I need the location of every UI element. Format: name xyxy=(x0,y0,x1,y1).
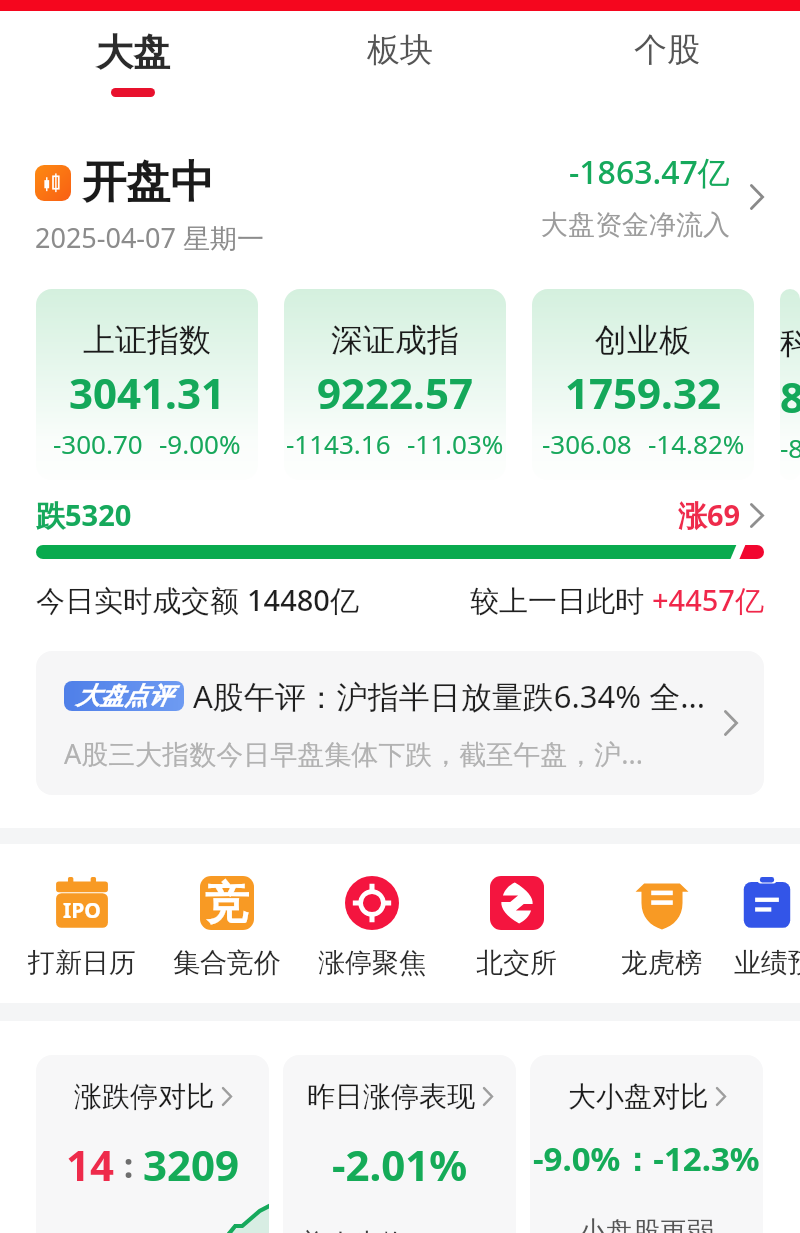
staticText: -2.01% xyxy=(332,1136,468,1193)
staticText: 集合竞价 xyxy=(173,946,281,980)
staticText: 上证指数 xyxy=(83,320,211,360)
button[interactable]: 创业板 xyxy=(532,289,754,480)
staticText: 板块 xyxy=(367,29,433,71)
staticText: 科创50 xyxy=(780,320,800,364)
button[interactable]: 北交所 xyxy=(444,876,589,980)
staticText: 竞 xyxy=(205,876,249,930)
staticText: 今日实时成交额 xyxy=(36,580,247,620)
staticText: 14 xyxy=(66,1136,115,1193)
staticText: A股三大指数今日早盘集体下跌，截至午盘，沪... xyxy=(64,735,643,772)
staticText: 1759.32 xyxy=(565,364,721,421)
button[interactable]: 龙虎榜 xyxy=(589,876,734,980)
staticText: -9.0%：-12.3% xyxy=(533,1136,760,1181)
staticText: 业绩预告 xyxy=(734,946,800,980)
button[interactable]: 竞 xyxy=(154,876,299,980)
button[interactable]: 跌5320 xyxy=(0,494,800,536)
staticText: 大盘资金净流入 xyxy=(541,208,730,242)
staticText: 大小盘对比 xyxy=(568,1079,708,1114)
button[interactable]: 板块 xyxy=(266,11,533,71)
staticText: 美农生物 xyxy=(299,1227,407,1233)
staticText: 开盘中 xyxy=(82,155,214,210)
staticText: 14480亿 xyxy=(247,580,359,620)
staticText: 跌5320 xyxy=(36,495,132,535)
button[interactable]: 大盘点评 xyxy=(36,651,764,795)
button[interactable]: 上证指数 xyxy=(36,289,258,480)
staticText: 3209 xyxy=(143,1136,240,1193)
staticText: 较上一日此时 xyxy=(470,580,652,620)
staticText: 9222.57 xyxy=(317,364,473,421)
staticText: -1863.47亿 xyxy=(569,150,730,194)
staticText: 涨跌停对比 xyxy=(74,1079,214,1114)
staticText: -1143.16 xyxy=(286,426,391,461)
staticText: 昨日涨停表现 xyxy=(307,1079,475,1114)
staticText: 小盘股更弱 xyxy=(579,1215,714,1233)
staticText: -306.08 xyxy=(542,426,632,461)
staticText: A股午评：沪指半日放量跌6.34% 全... xyxy=(193,675,706,717)
staticText: 创业板 xyxy=(595,320,691,360)
button[interactable]: 个股 xyxy=(533,11,800,71)
staticText: 深证成指 xyxy=(331,320,459,360)
staticText: 大盘点评 xyxy=(76,681,172,711)
staticText: 打新日历 xyxy=(28,946,136,980)
staticText: 888.88 xyxy=(780,368,800,425)
staticText: -300.70 xyxy=(53,426,143,461)
button[interactable]: 大盘 xyxy=(0,11,266,97)
staticText: 涨69 xyxy=(678,495,741,535)
staticText: : xyxy=(115,1142,143,1188)
staticText: 北交所 xyxy=(476,946,557,980)
staticText: -9.00% xyxy=(159,426,241,461)
button[interactable]: 业绩预告 xyxy=(734,876,800,980)
staticText: IPO xyxy=(63,896,101,925)
button[interactable]: IPO xyxy=(9,876,154,980)
staticText: 涨停聚焦 xyxy=(318,946,426,980)
staticText: 3041.31 xyxy=(69,364,225,421)
button[interactable]: 大小盘对比 xyxy=(530,1055,763,1233)
button[interactable]: 开盘中 xyxy=(0,155,800,267)
staticText: -88.88 xyxy=(780,430,800,465)
button[interactable]: 深证成指 xyxy=(284,289,506,480)
staticText: -11.03% xyxy=(407,426,504,461)
button[interactable]: 昨日涨停表现 xyxy=(283,1055,516,1233)
button[interactable]: 涨停聚焦 xyxy=(299,876,444,980)
button[interactable]: 科创50 xyxy=(780,289,800,480)
staticText: 个股 xyxy=(634,29,700,71)
staticText: +4457亿 xyxy=(652,580,764,620)
staticText: 大盘 xyxy=(96,29,170,76)
staticText: 龙虎榜 xyxy=(621,946,702,980)
staticText: -14.82% xyxy=(648,426,745,461)
staticText: 2025-04-07 星期一 xyxy=(35,219,264,256)
button[interactable]: 涨跌停对比 xyxy=(36,1055,269,1233)
